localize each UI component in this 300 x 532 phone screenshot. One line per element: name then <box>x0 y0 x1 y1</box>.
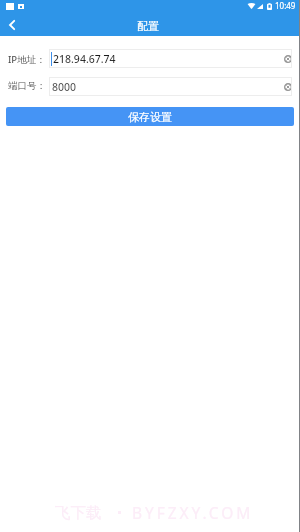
button[interactable]: Clear <box>282 53 294 65</box>
button[interactable]: Back <box>2 14 22 36</box>
staticText: 飞下载 <box>55 503 102 523</box>
staticText: 保存设置 <box>128 110 172 124</box>
staticText: 8000 <box>52 80 77 94</box>
staticText: 10:49 <box>275 0 296 11</box>
button[interactable]: 8000 <box>49 77 292 96</box>
staticText: 218.94.67.74 <box>53 52 116 66</box>
staticText: BYFZXY.COM <box>132 502 254 523</box>
staticText: 配置 <box>137 19 159 33</box>
staticText: IP地址： <box>8 53 46 66</box>
button[interactable]: 218.94.67.74 <box>49 49 292 68</box>
button[interactable]: Clear <box>282 81 294 93</box>
button[interactable]: 保存设置 <box>6 107 294 126</box>
staticText: 端口号： <box>8 80 46 92</box>
